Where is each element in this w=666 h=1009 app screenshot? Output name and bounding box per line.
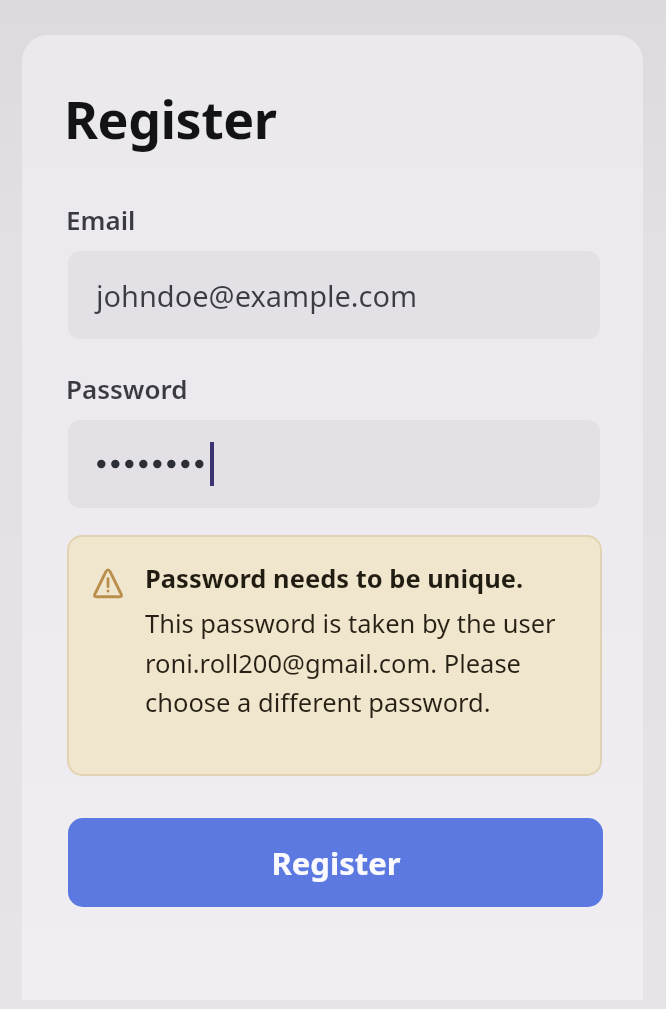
- staticText: Email: [66, 202, 136, 237]
- staticText: Password: [66, 371, 188, 406]
- staticText: Password needs to be unique.: [145, 561, 524, 596]
- staticText: johndoe@example.com: [96, 276, 418, 315]
- button[interactable]: [68, 420, 600, 508]
- button[interactable]: johndoe@example.com: [68, 251, 600, 339]
- staticText: This password is taken by the user roni.…: [145, 606, 585, 719]
- staticText: Register: [271, 842, 401, 884]
- staticText: Register: [64, 83, 277, 154]
- button[interactable]: Register: [68, 818, 603, 907]
